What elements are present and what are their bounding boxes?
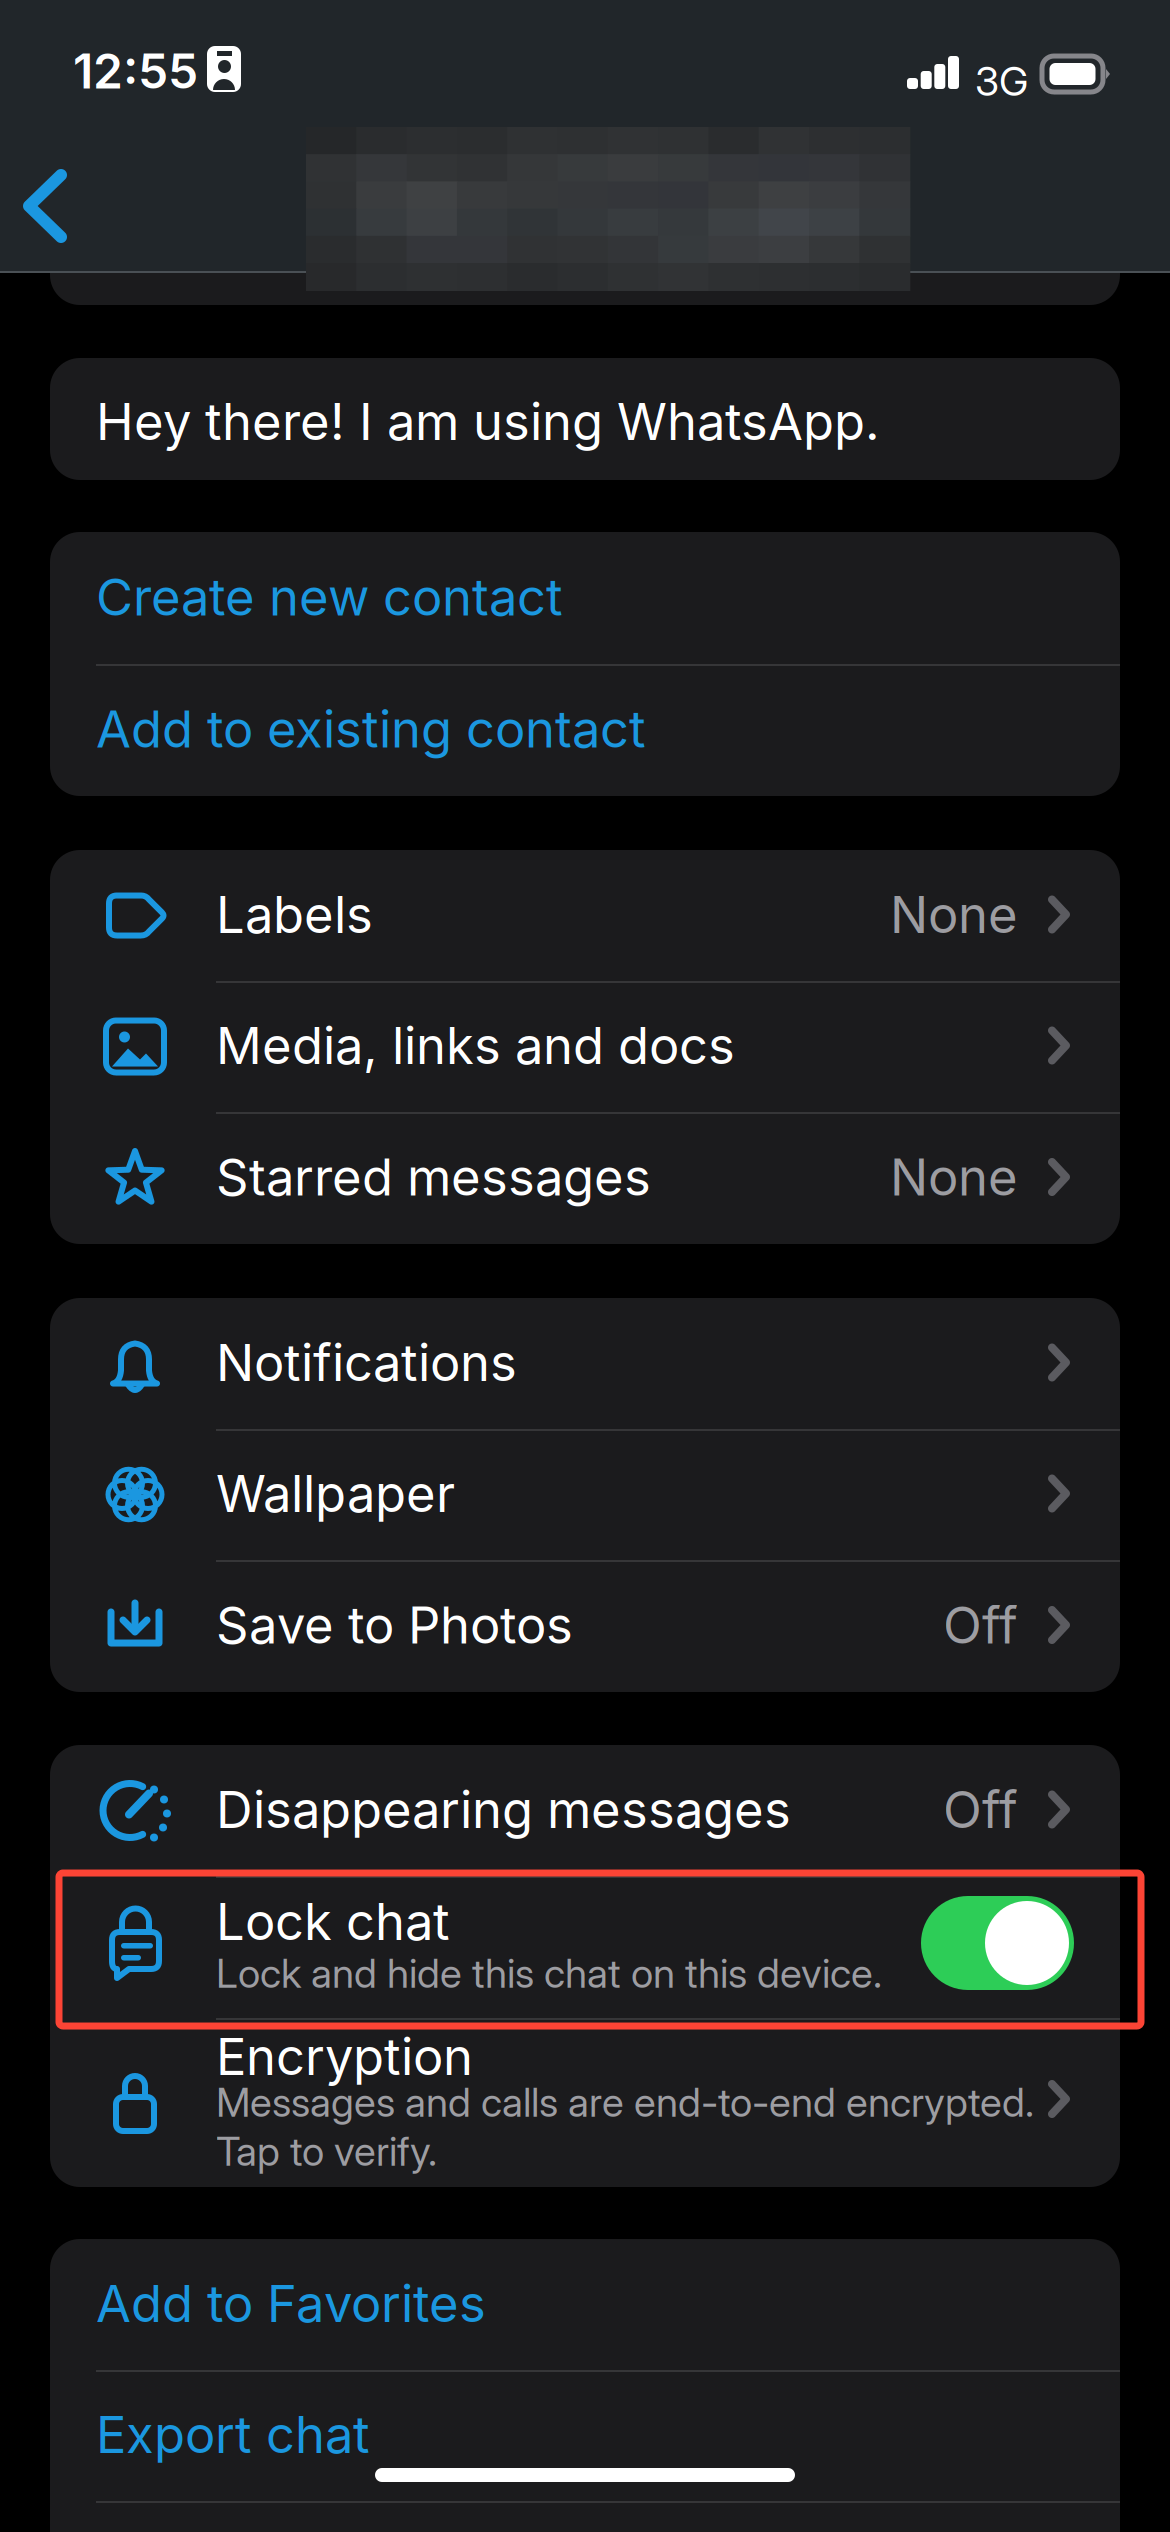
staticText: Create new contact xyxy=(96,566,563,628)
staticText: Tap to verify. xyxy=(216,2127,437,2175)
staticText: 12:55 xyxy=(73,42,198,100)
button[interactable]: Lock chat xyxy=(50,1876,1120,2018)
staticText: Disappearing messages xyxy=(216,1779,791,1840)
staticText: 3G xyxy=(975,57,1028,105)
button[interactable]: Media, links and docs xyxy=(50,981,1120,1112)
button[interactable]: Wallpaper xyxy=(50,1429,1120,1560)
staticText: Off xyxy=(943,1779,1018,1840)
button[interactable]: Create new contact xyxy=(50,532,1120,664)
staticText: Lock chat xyxy=(216,1891,450,1952)
staticText: Save to Photos xyxy=(216,1594,573,1656)
staticText: Add to existing contact xyxy=(96,698,646,760)
button[interactable]: Disappearing messages xyxy=(50,1745,1120,1876)
button[interactable]: Back xyxy=(0,147,118,267)
staticText: Labels xyxy=(216,884,373,945)
button[interactable]: Save to Photos xyxy=(50,1560,1120,1692)
staticText: Off xyxy=(943,1594,1018,1656)
staticText: Media, links and docs xyxy=(216,1015,735,1076)
staticText: Notifications xyxy=(216,1332,517,1393)
staticText: Lock and hide this chat on this device. xyxy=(216,1949,882,1997)
staticText: Export chat xyxy=(96,2404,370,2465)
button[interactable]: Labels xyxy=(50,850,1120,981)
button[interactable]: Add to Favorites xyxy=(50,2239,1120,2370)
staticText: Messages and calls are end-to-end encryp… xyxy=(216,2078,1034,2126)
button[interactable]: Add to existing contact xyxy=(50,664,1120,796)
button[interactable]: Encryption xyxy=(50,2018,1120,2187)
button[interactable]: Notifications xyxy=(50,1298,1120,1429)
staticText: Add to Favorites xyxy=(96,2273,486,2334)
staticText: None xyxy=(890,1146,1018,1208)
staticText: Starred messages xyxy=(216,1146,651,1208)
button[interactable]: Starred messages xyxy=(50,1112,1120,1244)
button[interactable]: Export chat xyxy=(50,2370,1120,2501)
staticText: Hey there! I am using WhatsApp. xyxy=(96,391,880,452)
staticText: Encryption xyxy=(216,2026,473,2087)
staticText: None xyxy=(890,884,1018,945)
staticText: Wallpaper xyxy=(216,1463,455,1524)
